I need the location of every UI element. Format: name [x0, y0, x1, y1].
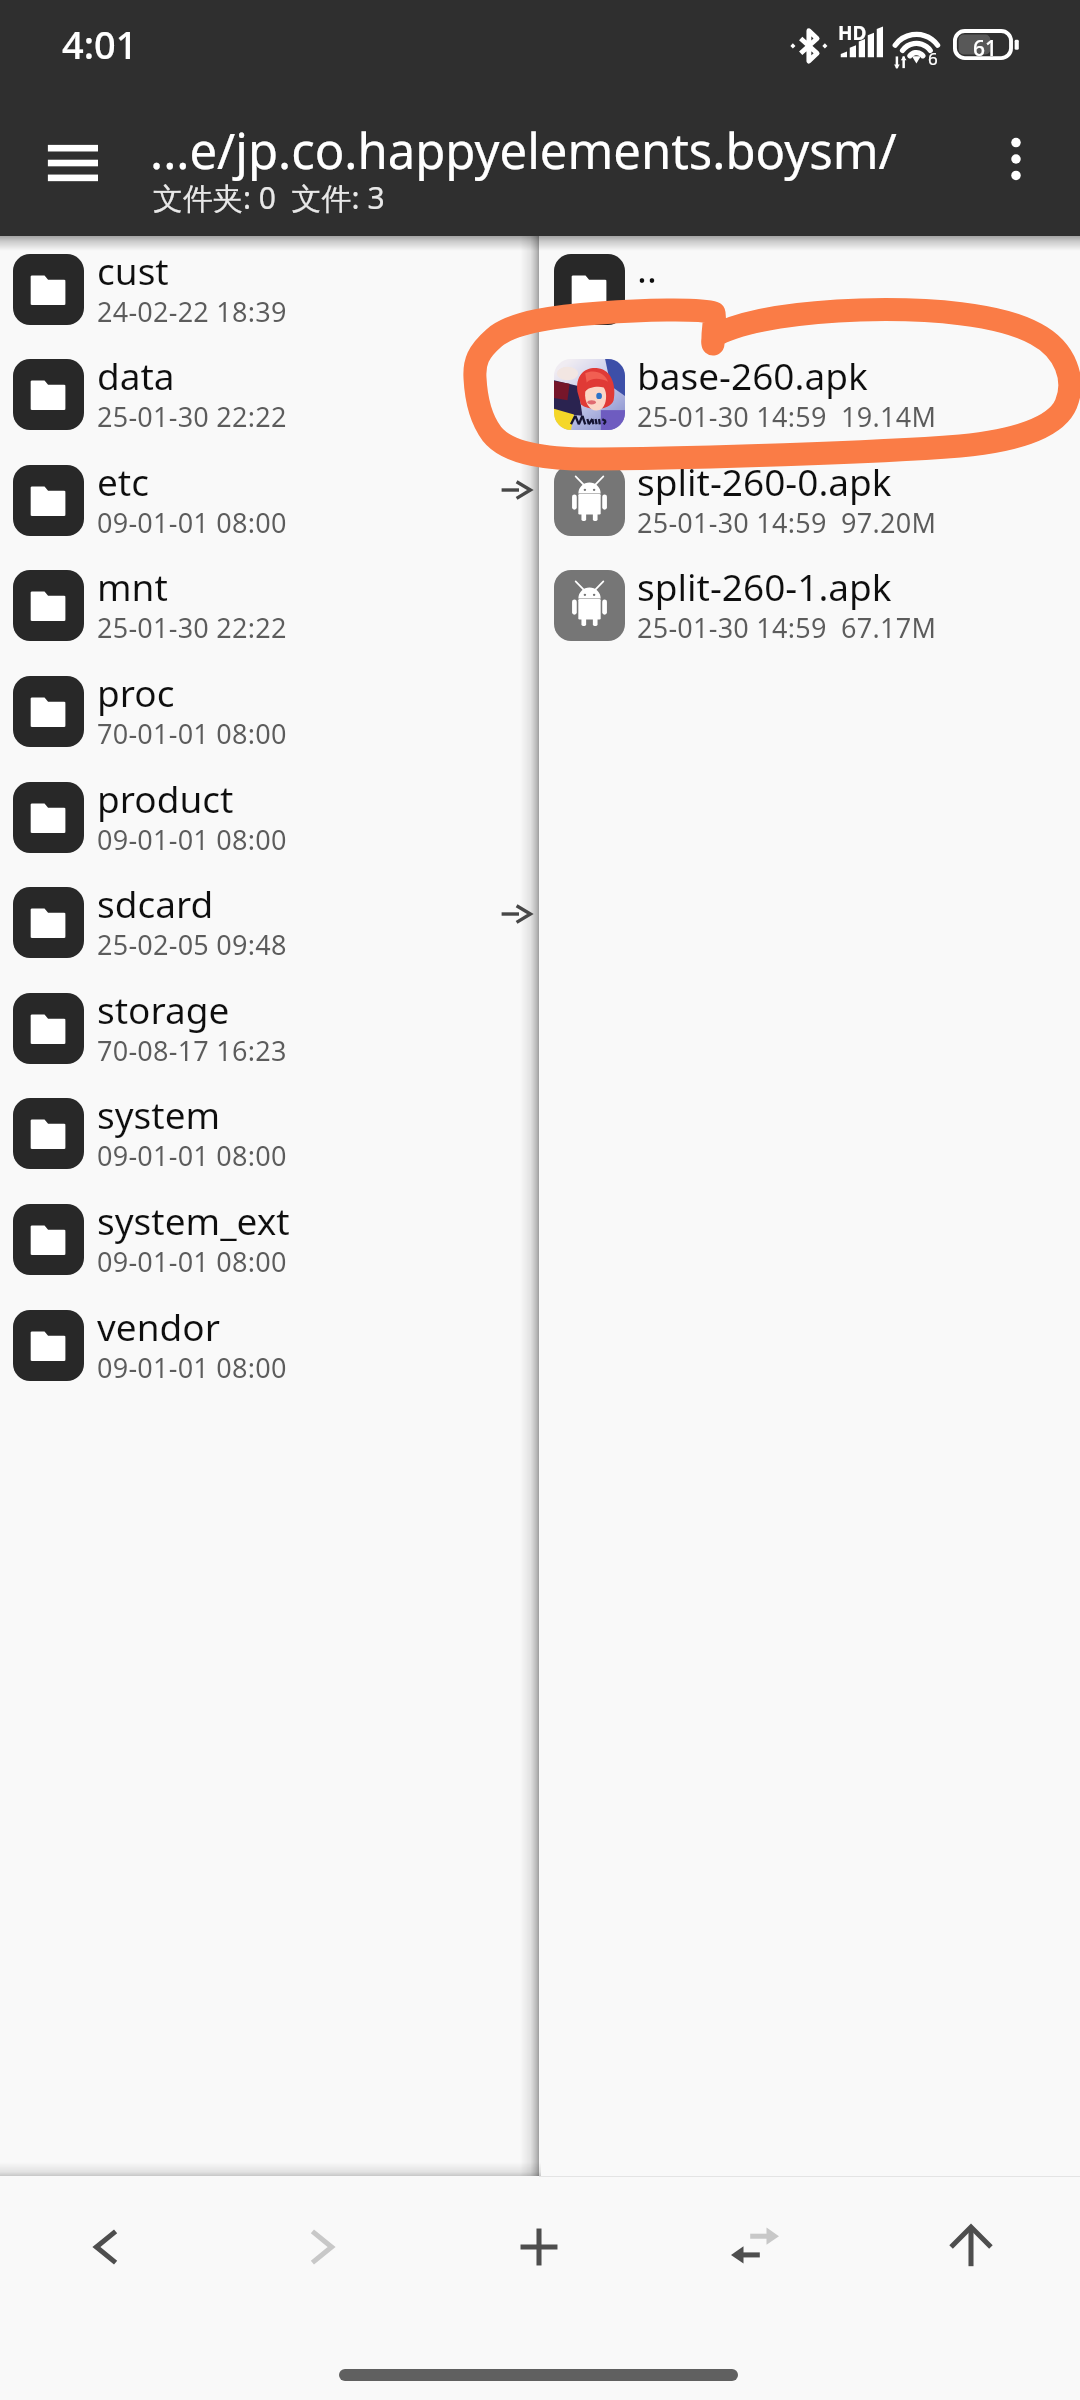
staticText: storage [97, 984, 230, 1034]
staticText: 61 [973, 34, 998, 63]
staticText: data [97, 350, 175, 400]
staticText: mnt [97, 561, 168, 611]
button[interactable] [0, 1081, 533, 1187]
staticText: 25-01-30 14:59 97.20M [637, 504, 937, 541]
staticText: system [97, 1089, 221, 1139]
button[interactable] [0, 342, 533, 448]
staticText: 09-01-01 08:00 [97, 504, 287, 541]
staticText: 25-01-30 14:59 19.14M [637, 398, 937, 435]
staticText: base-260.apk [637, 350, 868, 400]
staticText: 25-01-30 22:22 [97, 398, 287, 435]
button[interactable] [541, 342, 1067, 448]
button[interactable] [0, 1293, 533, 1399]
staticText: 09-01-01 08:00 [97, 1349, 287, 1386]
staticText: 25-02-05 09:48 [97, 926, 287, 963]
staticText: proc [97, 667, 175, 717]
button[interactable] [0, 659, 533, 765]
staticText: etc [97, 456, 149, 506]
button[interactable] [0, 553, 533, 659]
staticText: 4:01 [62, 18, 138, 70]
button[interactable] [0, 1187, 533, 1293]
staticText: vendor [97, 1301, 220, 1351]
staticText: 文件夹: 0 文件: 3 [153, 177, 385, 218]
button[interactable] [541, 553, 1067, 659]
button[interactable]: Transfer [695, 2187, 815, 2307]
button[interactable]: Up [911, 2187, 1031, 2307]
button[interactable]: Back [46, 2187, 166, 2307]
button[interactable]: New [479, 2187, 599, 2307]
button[interactable] [0, 448, 533, 554]
button[interactable] [0, 237, 533, 343]
staticText: 09-01-01 08:00 [97, 821, 287, 858]
staticText: 70-01-01 08:00 [97, 715, 287, 752]
staticText: 09-01-01 08:00 [97, 1137, 287, 1174]
staticText: cust [97, 245, 169, 295]
staticText: ...e/jp.co.happyelements.boysm/ [150, 117, 897, 184]
button[interactable] [0, 765, 533, 871]
button[interactable] [541, 448, 1067, 554]
button[interactable]: More options [975, 118, 1057, 200]
button[interactable] [541, 237, 1067, 343]
staticText: 25-01-30 22:22 [97, 609, 287, 646]
button[interactable]: Forward [262, 2187, 382, 2307]
staticText: split-260-0.apk [637, 456, 892, 506]
staticText: product [97, 773, 234, 823]
staticText: 24-02-22 18:39 [97, 293, 287, 330]
staticText: .. [637, 243, 657, 293]
staticText: system_ext [97, 1195, 290, 1245]
button[interactable] [0, 870, 533, 976]
staticText: 09-01-01 08:00 [97, 1243, 287, 1280]
staticText: 70-08-17 16:23 [97, 1032, 287, 1069]
staticText: 25-01-30 14:59 67.17M [637, 609, 937, 646]
staticText: sdcard [97, 878, 214, 928]
button[interactable] [0, 976, 533, 1082]
staticText: 6 [928, 47, 938, 70]
staticText: HD [838, 20, 867, 46]
staticText: split-260-1.apk [637, 561, 892, 611]
button[interactable]: Menu [42, 132, 98, 188]
